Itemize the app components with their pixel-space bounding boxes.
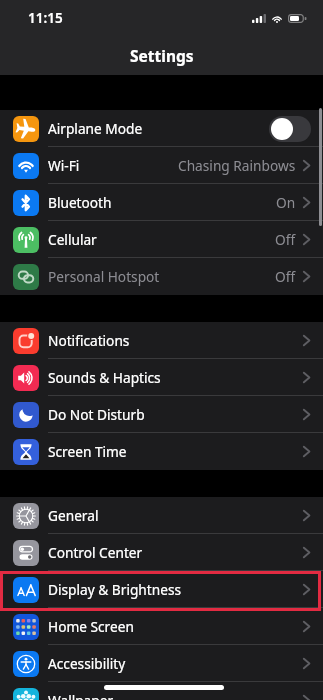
button[interactable]: Accessibility [0, 645, 323, 682]
button[interactable]: Home Screen [0, 608, 323, 645]
staticText: Airplane Mode [48, 119, 143, 138]
staticText: General [48, 506, 99, 525]
staticText: Wallpaper [48, 691, 114, 700]
button[interactable]: Notifications [0, 322, 323, 359]
staticText: Settings [130, 45, 194, 66]
staticText: Chasing Rainbows [178, 156, 296, 175]
button[interactable]: Screen Time [0, 433, 323, 470]
staticText: Sounds & Haptics [48, 368, 161, 387]
staticText: Cellular [48, 230, 97, 249]
staticText: Wi-Fi [48, 156, 80, 175]
staticText: 11:15 [28, 9, 63, 27]
button[interactable]: General [0, 497, 323, 534]
button[interactable]: Wi-Fi [0, 147, 323, 184]
button[interactable]: Personal Hotspot [0, 258, 323, 295]
staticText: Bluetooth [48, 193, 112, 212]
staticText: Accessibility [48, 654, 126, 673]
staticText: Screen Time [48, 442, 127, 461]
button[interactable]: Airplane Mode [0, 110, 323, 147]
staticText: Do Not Disturb [48, 405, 145, 424]
staticText: On [276, 193, 296, 212]
staticText: Off [275, 230, 296, 249]
button[interactable]: Cellular [0, 221, 323, 258]
staticText: Personal Hotspot [48, 267, 160, 286]
button[interactable]: Control Center [0, 534, 323, 571]
staticText: Display & Brightness [48, 580, 182, 599]
button[interactable]: Wallpaper [0, 682, 323, 700]
staticText: Control Center [48, 543, 143, 562]
button[interactable]: Do Not Disturb [0, 396, 323, 433]
button[interactable]: Sounds & Haptics [0, 359, 323, 396]
staticText: Notifications [48, 331, 130, 350]
button[interactable]: Bluetooth [0, 184, 323, 221]
button[interactable]: Display & Brightness [0, 571, 323, 608]
staticText: Off [275, 267, 296, 286]
staticText: Home Screen [48, 617, 134, 636]
